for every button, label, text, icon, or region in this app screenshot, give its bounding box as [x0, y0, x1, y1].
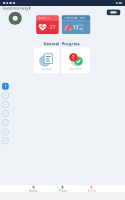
button[interactable]: TODAY'S — [36, 15, 59, 34]
button[interactable]: Shortcut — [2, 101, 9, 108]
staticText: < — [4, 103, 6, 106]
staticText: avg — [79, 27, 83, 31]
button[interactable]: Shortcut — [2, 110, 9, 117]
staticText: ? — [4, 84, 6, 89]
staticText: Home — [29, 189, 38, 193]
staticText: THIS WEEK, HRS — [64, 16, 85, 19]
staticText: Good morning — [2, 5, 27, 11]
button[interactable]: Shortcut — [2, 128, 9, 135]
button[interactable]: Shortcut — [2, 119, 9, 126]
staticText: hrs — [79, 23, 83, 27]
button[interactable]: Help — [2, 83, 9, 90]
staticText: Plans — [58, 189, 66, 193]
staticText: + — [4, 112, 6, 115]
staticText: 27 — [49, 24, 55, 31]
staticText: 13 — [73, 24, 79, 31]
button[interactable]: Plans — [48, 185, 77, 192]
staticText: TODAY'S — [38, 16, 49, 19]
button[interactable]: THIS WEEK, HRS — [62, 15, 90, 34]
button[interactable]: Alerts — [77, 185, 106, 192]
staticText: o — [4, 121, 6, 124]
staticText: General — [43, 41, 58, 46]
button[interactable]: Account — [107, 10, 120, 15]
staticText: i — [5, 94, 6, 97]
staticText: Alerts — [87, 189, 95, 193]
button[interactable]: Home — [19, 185, 48, 192]
staticText: x — [5, 139, 6, 143]
button[interactable]: Shortcut — [2, 92, 9, 99]
button[interactable]: Shortcut — [2, 137, 9, 144]
staticText: ? — [72, 54, 75, 61]
button[interactable]: ? — [62, 47, 90, 73]
staticText: s — [5, 130, 6, 133]
staticText: Progress — [61, 41, 79, 46]
button[interactable] — [34, 47, 59, 73]
